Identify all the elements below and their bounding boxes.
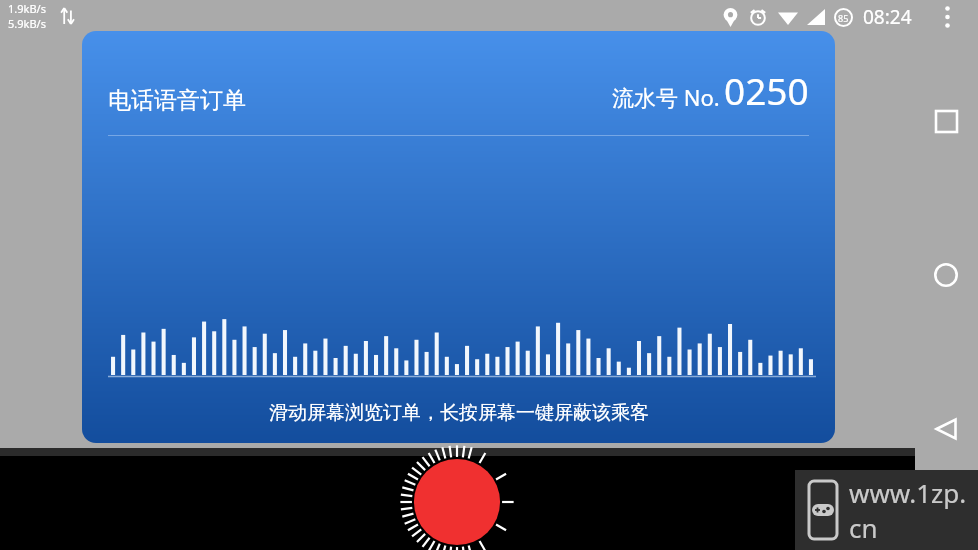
staticText: 0250 [724, 65, 809, 115]
staticText: 流水号 No. [612, 82, 720, 112]
button[interactable]: Home [929, 258, 963, 292]
staticText: 滑动屏幕浏览订单，长按屏幕一键屏蔽该乘客 [269, 401, 649, 425]
staticText: 85 [838, 12, 849, 24]
button[interactable]: Recent apps [929, 104, 963, 138]
staticText: 电话语音订单 [108, 86, 246, 115]
button[interactable]: Back [929, 412, 963, 446]
button[interactable]: Record [398, 443, 516, 550]
staticText: 1.9kB/s [8, 1, 46, 16]
button[interactable]: More options [934, 0, 960, 34]
staticText: 5.9kB/s [8, 16, 46, 31]
staticText: 08:24 [863, 4, 912, 30]
staticText: www.1zp.cn [849, 475, 978, 545]
button[interactable]: 电话语音订单 [82, 31, 835, 443]
